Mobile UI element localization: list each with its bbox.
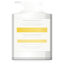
button[interactable]: Spray bottle product photo — [0, 0, 64, 64]
